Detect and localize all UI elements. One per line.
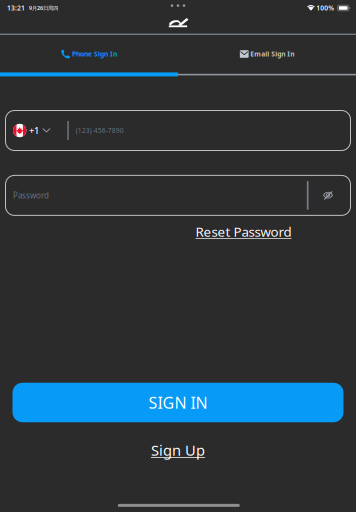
staticText: Email Sign In <box>250 50 294 58</box>
staticText: Phone Sign In <box>72 50 117 58</box>
staticText: SIGN IN <box>148 392 207 413</box>
button[interactable]: Show password <box>308 176 347 214</box>
button[interactable]: Email Sign In <box>178 35 356 73</box>
button[interactable]: Sign Up <box>151 436 205 464</box>
staticText: Password <box>13 190 49 201</box>
staticText: Sign Up <box>151 440 205 460</box>
staticText: +1 <box>29 124 39 137</box>
button[interactable]: Reset Password <box>195 219 291 244</box>
button[interactable]: Country calling code <box>13 115 50 146</box>
button[interactable]: Phone Sign In <box>0 35 178 73</box>
staticText: (123) 456-7890 <box>76 126 124 135</box>
staticText: 13:21 <box>7 4 25 12</box>
staticText: 9月26日周四 <box>29 4 58 12</box>
button[interactable]: SIGN IN <box>12 383 343 422</box>
staticText: Reset Password <box>195 223 291 240</box>
staticText: 100% <box>316 4 334 12</box>
